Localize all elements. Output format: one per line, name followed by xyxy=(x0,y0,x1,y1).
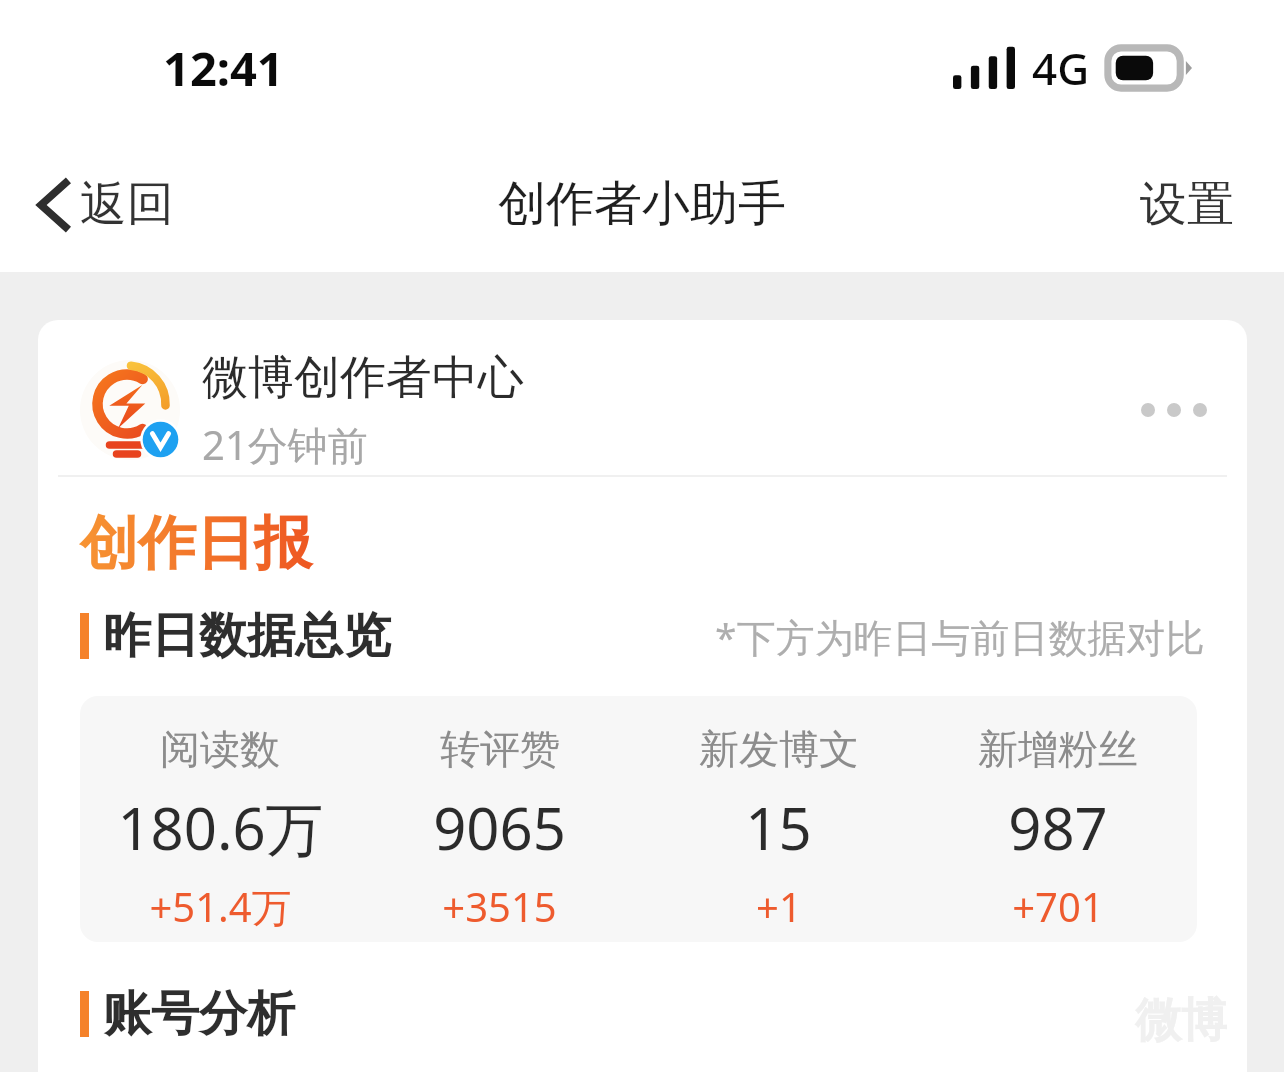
staticText: 新增粉丝 xyxy=(978,724,1138,774)
staticText: +51.4万 xyxy=(149,879,292,934)
button[interactable]: More options xyxy=(1131,367,1217,453)
staticText: 9065 xyxy=(433,788,566,867)
staticText: 返回 xyxy=(80,175,174,234)
button[interactable]: 阅读数 xyxy=(80,696,1197,942)
staticText: 21分钟前 xyxy=(202,417,368,472)
staticText: *下方为昨日与前日数据对比 xyxy=(715,610,1205,663)
staticText: 987 xyxy=(1008,788,1108,867)
staticText: 4G xyxy=(1032,38,1090,98)
staticText: 微博 xyxy=(1135,992,1227,1050)
staticText: 创作者小助手 xyxy=(498,174,786,234)
button[interactable]: 设置 xyxy=(1132,165,1242,244)
staticText: 阅读数 xyxy=(160,724,280,774)
button[interactable]: 返回 xyxy=(30,165,182,244)
staticText: +3515 xyxy=(442,879,557,933)
staticText: 转评赞 xyxy=(440,724,560,774)
staticText: 12:41 xyxy=(163,36,284,100)
staticText: 微博创作者中心 xyxy=(202,349,524,407)
staticText: 创作日报 xyxy=(80,507,312,580)
staticText: +701 xyxy=(1012,879,1104,933)
staticText: 15 xyxy=(745,788,812,867)
button[interactable] xyxy=(80,360,180,460)
staticText: 新发博文 xyxy=(699,724,859,774)
staticText: 昨日数据总览 xyxy=(103,606,391,666)
staticText: +1 xyxy=(756,879,802,933)
staticText: 账号分析 xyxy=(103,984,295,1044)
staticText: 180.6万 xyxy=(117,788,324,867)
